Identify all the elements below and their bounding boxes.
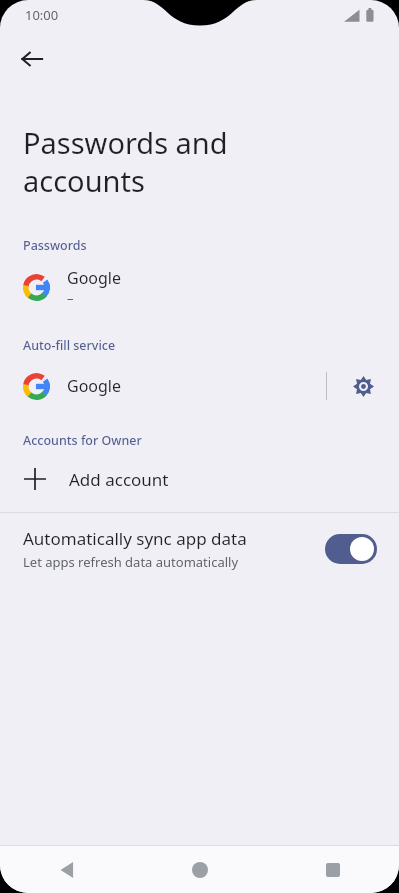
button[interactable]: Google — [0, 359, 326, 413]
button[interactable]: Back — [9, 36, 55, 82]
staticText: 10:00 — [25, 6, 59, 24]
staticText: Auto-fill service — [23, 337, 116, 354]
staticText: – — [67, 289, 74, 307]
staticText: Accounts for Owner — [23, 432, 142, 449]
button[interactable]: Automatically sync app data — [0, 513, 399, 585]
staticText: Add account — [69, 468, 169, 491]
staticText: Automatically sync app data — [23, 527, 247, 550]
staticText: Google — [67, 375, 122, 397]
button[interactable]: Recent apps — [266, 846, 399, 893]
staticText: Passwords and accounts — [23, 123, 228, 200]
button[interactable]: Back — [0, 846, 133, 893]
button[interactable]: Home — [133, 846, 266, 893]
button[interactable]: Auto-fill settings — [327, 359, 399, 413]
staticText: Passwords — [23, 237, 87, 254]
button[interactable]: Google — [0, 259, 399, 315]
staticText: Let apps refresh data automatically — [23, 553, 239, 571]
staticText: Google — [67, 267, 122, 289]
button[interactable]: Add account — [0, 454, 399, 504]
